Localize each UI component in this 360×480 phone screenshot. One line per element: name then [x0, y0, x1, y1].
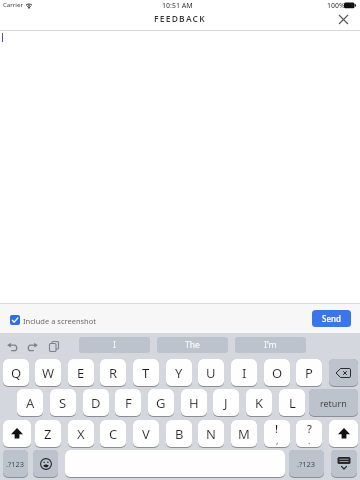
button[interactable] [3, 420, 31, 447]
button[interactable]: ! [264, 420, 290, 447]
button[interactable]: Z [35, 420, 61, 447]
button[interactable] [49, 341, 59, 352]
staticText: C [109, 425, 118, 443]
button[interactable]: I [231, 359, 257, 386]
staticText: The [185, 339, 200, 351]
staticText: M [238, 425, 250, 443]
staticText: Y [175, 364, 183, 382]
staticText: S [59, 394, 67, 412]
staticText: O [272, 364, 283, 382]
button[interactable]: U [198, 359, 224, 386]
button[interactable] [329, 359, 358, 386]
staticText: Send [322, 313, 341, 324]
staticText: D [91, 394, 101, 412]
staticText: T [142, 364, 150, 382]
button[interactable]: D [83, 389, 109, 416]
button[interactable]: G [148, 389, 174, 416]
button[interactable]: T [133, 359, 159, 386]
staticText: 10:51 AM [162, 1, 193, 11]
button[interactable] [26, 342, 38, 352]
staticText: X [77, 425, 85, 443]
button[interactable]: B [166, 420, 192, 447]
staticText: 100% [327, 1, 345, 11]
button[interactable]: W [35, 359, 61, 386]
button[interactable]: return [309, 389, 358, 416]
button[interactable]: R [100, 359, 126, 386]
staticText: ! [275, 421, 279, 436]
staticText: W [42, 364, 55, 382]
button[interactable]: N [198, 420, 224, 447]
button[interactable] [329, 420, 358, 447]
button[interactable]: F [115, 389, 141, 416]
staticText: Z [44, 425, 52, 443]
staticText: ? [307, 421, 312, 436]
staticText: L [289, 394, 296, 412]
button[interactable]: Y [166, 359, 192, 386]
staticText: B [175, 425, 184, 443]
button[interactable]: Q [3, 359, 29, 386]
staticText: . [308, 434, 311, 446]
staticText: F [125, 394, 132, 412]
staticText: J [224, 394, 228, 412]
staticText: Carrier [3, 1, 23, 9]
button[interactable]: A [17, 389, 43, 416]
button[interactable]: H [181, 389, 207, 416]
button[interactable] [65, 450, 285, 477]
staticText: FEEDBACK [154, 13, 206, 25]
button[interactable] [335, 11, 352, 28]
button[interactable]: E [68, 359, 94, 386]
button[interactable] [331, 450, 357, 477]
staticText: .?123 [6, 459, 25, 469]
staticText: , [276, 434, 279, 446]
button[interactable] [7, 342, 19, 352]
button[interactable]: O [264, 359, 290, 386]
staticText: A [26, 394, 35, 412]
button[interactable]: .?123 [3, 450, 28, 477]
staticText: K [255, 394, 264, 412]
button[interactable]: P [296, 359, 322, 386]
staticText: U [206, 364, 216, 382]
button[interactable]: S [50, 389, 76, 416]
staticText: return [320, 397, 347, 409]
button[interactable]: ? [296, 420, 322, 447]
staticText: V [142, 425, 150, 443]
staticText: I [242, 364, 247, 382]
button[interactable]: C [100, 420, 126, 447]
button[interactable]: K [246, 389, 272, 416]
staticText: P [305, 364, 313, 382]
staticText: H [189, 394, 199, 412]
button[interactable]: M [231, 420, 257, 447]
staticText: I'm [264, 339, 277, 351]
button[interactable]: V [133, 420, 159, 447]
button[interactable] [10, 315, 20, 325]
button[interactable]: The [157, 337, 228, 353]
staticText: .?123 [297, 459, 316, 469]
staticText: E [77, 364, 85, 382]
button[interactable] [33, 450, 58, 477]
button[interactable]: L [279, 389, 305, 416]
staticText: R [109, 364, 118, 382]
button[interactable]: J [213, 389, 239, 416]
staticText: N [206, 425, 216, 443]
staticText: Q [11, 364, 22, 382]
button[interactable]: I [79, 337, 150, 353]
button[interactable]: X [68, 420, 94, 447]
staticText: G [156, 394, 166, 412]
button[interactable]: Send [312, 310, 351, 327]
button[interactable]: I'm [235, 337, 306, 353]
staticText: Include a screenshot [23, 316, 97, 326]
staticText: I [113, 339, 116, 351]
button[interactable]: .?123 [289, 450, 324, 477]
